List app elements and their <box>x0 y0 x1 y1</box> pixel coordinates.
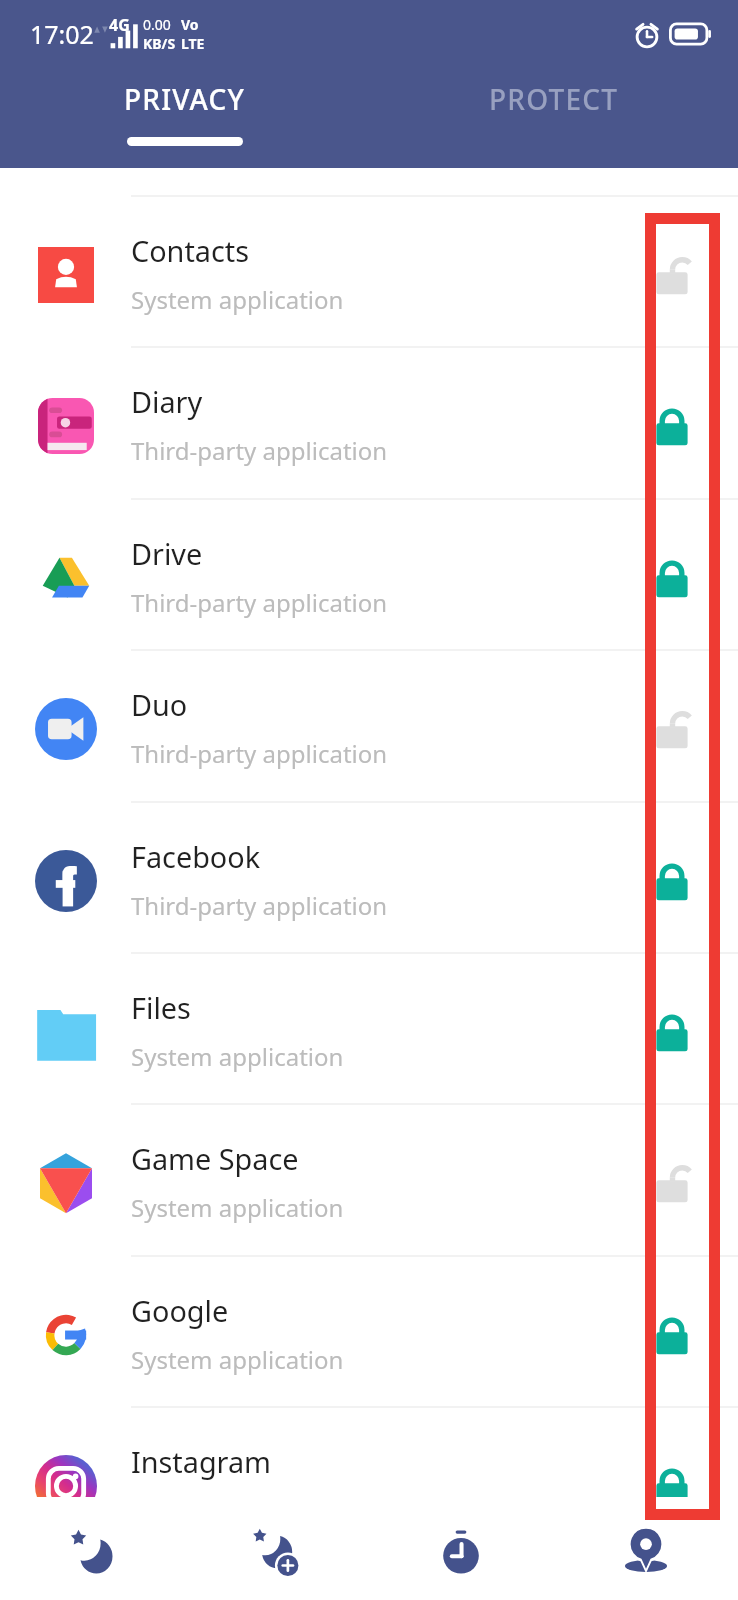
staticText: Third-party application <box>131 434 388 467</box>
staticText: Third-party application <box>131 737 388 770</box>
staticText: 17:02 <box>30 17 94 51</box>
button[interactable]: PRIVACY <box>0 68 369 168</box>
staticText: Third-party application <box>131 889 388 922</box>
button[interactable]: Locked <box>606 502 738 653</box>
button[interactable]: Duo <box>0 649 738 800</box>
staticText: System application <box>131 283 344 316</box>
button[interactable]: Game Space <box>0 1103 738 1254</box>
staticText: 4G <box>109 14 130 36</box>
button[interactable]: Drive <box>0 498 738 649</box>
button[interactable]: Location <box>553 1497 738 1600</box>
button[interactable]: Instagram <box>0 1406 738 1497</box>
button[interactable]: Unlocked <box>606 199 738 350</box>
staticText: KB/S <box>143 34 176 53</box>
button[interactable]: Night mode <box>0 1497 184 1600</box>
staticText: 0.00 <box>143 15 171 34</box>
staticText: Facebook <box>131 837 261 876</box>
staticText: Third-party application <box>131 586 388 619</box>
staticText: System application <box>131 1343 344 1376</box>
staticText: Vo <box>181 15 199 34</box>
button[interactable]: Locked <box>606 350 738 501</box>
staticText: Game Space <box>131 1139 299 1178</box>
staticText: Drive <box>131 534 203 573</box>
staticText: PRIVACY <box>124 80 246 118</box>
staticText: Files <box>131 988 191 1027</box>
staticText: LTE <box>181 34 205 53</box>
button[interactable]: Facebook <box>0 801 738 952</box>
staticText: Duo <box>131 685 188 724</box>
button[interactable]: Diary <box>0 346 738 497</box>
button[interactable]: Timer <box>368 1497 553 1600</box>
staticText: PROTECT <box>489 80 619 118</box>
button[interactable]: Locked <box>606 956 738 1107</box>
button[interactable]: Contacts <box>0 195 738 346</box>
button[interactable]: Files <box>0 952 738 1103</box>
staticText: System application <box>131 1040 344 1073</box>
button[interactable]: PROTECT <box>369 68 738 168</box>
button[interactable]: Schedule night mode <box>184 1497 368 1600</box>
button[interactable]: Locked <box>606 1259 738 1410</box>
staticText: Contacts <box>131 231 249 270</box>
button[interactable]: Locked <box>606 1410 738 1497</box>
button[interactable]: Locked <box>606 805 738 956</box>
staticText: Google <box>131 1291 229 1330</box>
button[interactable]: Unlocked <box>606 653 738 804</box>
staticText: System application <box>131 1191 344 1224</box>
button[interactable]: Google <box>0 1255 738 1406</box>
staticText: Diary <box>131 382 203 421</box>
button[interactable]: Unlocked <box>606 1107 738 1258</box>
staticText: Instagram <box>131 1442 272 1481</box>
